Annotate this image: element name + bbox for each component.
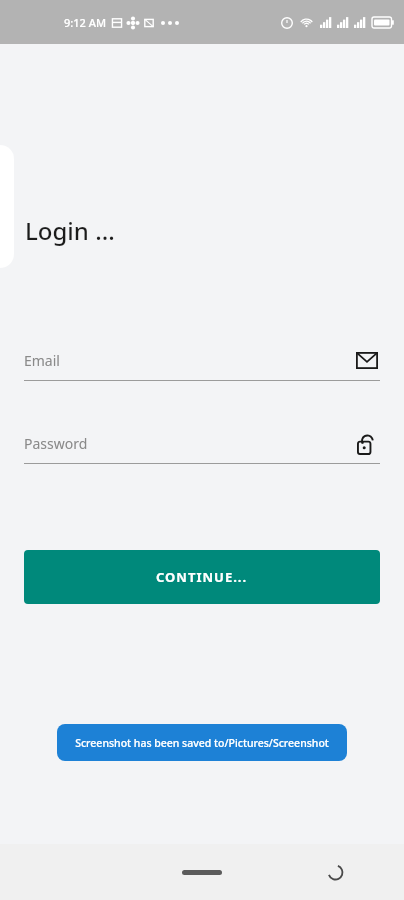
button[interactable]: Email — [24, 342, 380, 381]
button[interactable]: Home — [170, 855, 234, 889]
button[interactable]: Password — [24, 425, 380, 464]
button[interactable]: Back — [318, 855, 352, 889]
staticText: Login ... — [25, 214, 115, 247]
button[interactable]: CONTINUE... — [24, 550, 380, 604]
staticText: Password — [24, 434, 354, 453]
staticText: CONTINUE... — [156, 568, 248, 586]
button[interactable]: Show password — [354, 430, 380, 456]
button[interactable]: Email — [354, 347, 380, 373]
staticText: Email — [24, 351, 354, 370]
staticText: 9:12 AM — [64, 15, 107, 30]
staticText: Screenshot has been saved to/Pictures/Sc… — [75, 736, 329, 750]
